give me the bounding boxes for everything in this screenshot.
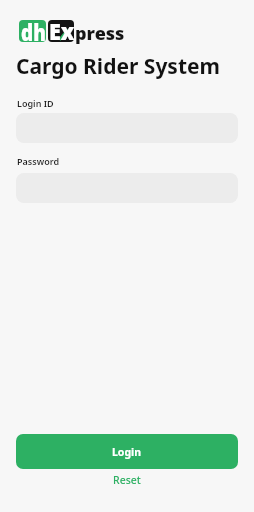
staticText: Login [112,445,142,459]
staticText: Login ID [17,97,54,109]
button[interactable]: Login [16,434,238,469]
staticText: press [75,21,125,46]
staticText: Ex [49,15,75,46]
staticText: Cargo Rider System [16,52,221,81]
staticText: Password [17,155,60,167]
staticText: dh [21,16,46,47]
staticText: Reset [113,473,141,487]
button[interactable]: Reset [0,471,254,489]
